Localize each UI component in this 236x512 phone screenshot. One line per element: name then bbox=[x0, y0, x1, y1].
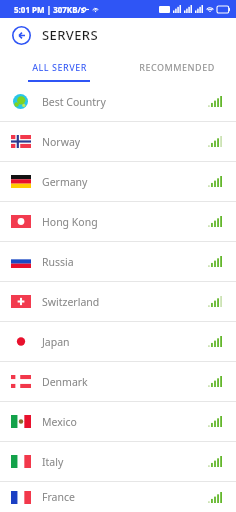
staticText: ALL SERVER bbox=[32, 61, 87, 73]
staticText: France bbox=[42, 490, 208, 504]
staticText: Norway bbox=[42, 135, 208, 149]
staticText: Russia bbox=[42, 255, 208, 269]
button[interactable]: Russia bbox=[0, 242, 236, 281]
staticText: Mexico bbox=[42, 415, 208, 429]
staticText: RECOMMENDED bbox=[139, 61, 215, 73]
staticText: Best Country bbox=[42, 95, 208, 109]
button[interactable]: Back bbox=[8, 22, 34, 48]
button[interactable]: Denmark bbox=[0, 362, 236, 401]
button[interactable]: Germany bbox=[0, 162, 236, 201]
staticText: Germany bbox=[42, 175, 208, 189]
staticText: Italy bbox=[42, 455, 208, 469]
staticText: SERVERS bbox=[42, 26, 99, 44]
staticText: Denmark bbox=[42, 375, 208, 389]
button[interactable]: Japan bbox=[0, 322, 236, 361]
button[interactable]: Switzerland bbox=[0, 282, 236, 321]
button[interactable]: Hong Kong bbox=[0, 202, 236, 241]
staticText: 5:01 PM | 307KB/s bbox=[14, 4, 85, 15]
button[interactable]: Norway bbox=[0, 122, 236, 161]
button[interactable]: ALL SERVER bbox=[0, 52, 118, 82]
staticText: Hong Kong bbox=[42, 215, 208, 229]
button[interactable]: Mexico bbox=[0, 402, 236, 441]
staticText: Japan bbox=[42, 335, 208, 349]
button[interactable]: RECOMMENDED bbox=[118, 52, 236, 82]
staticText: Switzerland bbox=[42, 295, 208, 309]
button[interactable]: Italy bbox=[0, 442, 236, 481]
button[interactable]: Best Country bbox=[0, 82, 236, 121]
button[interactable]: France bbox=[0, 482, 236, 512]
